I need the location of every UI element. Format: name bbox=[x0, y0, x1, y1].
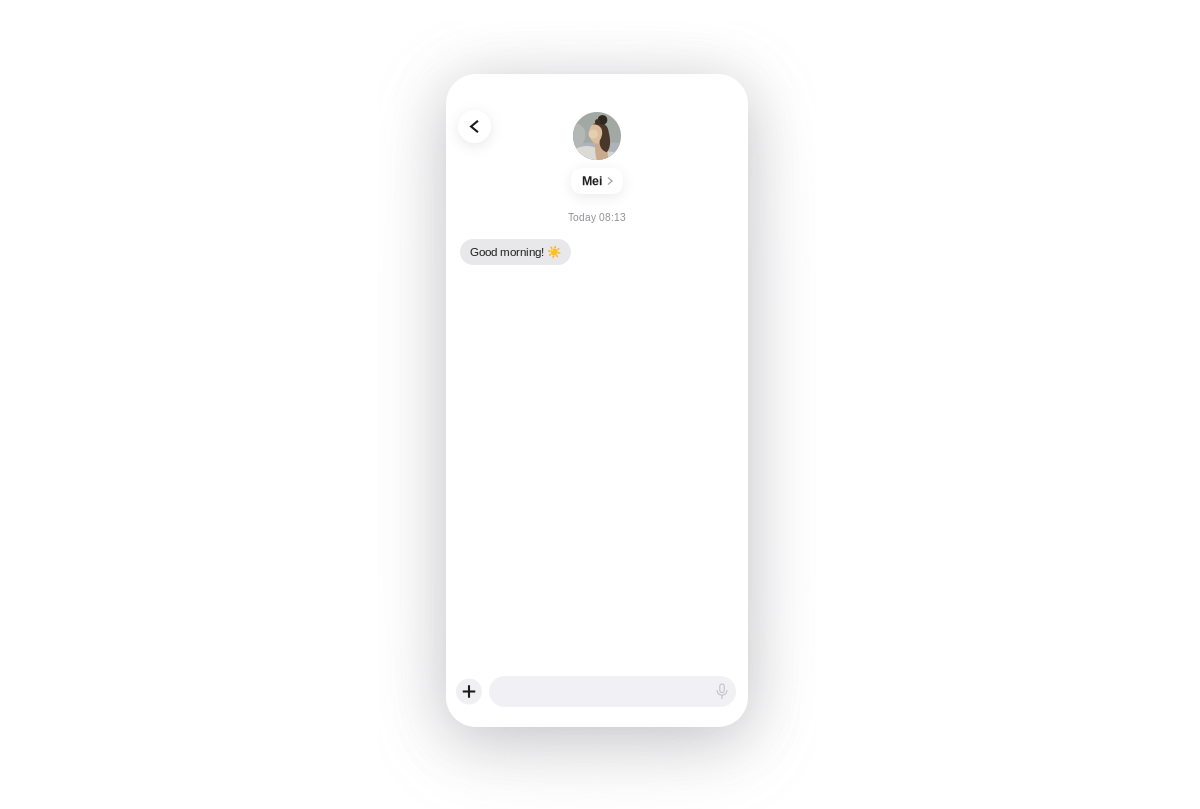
button[interactable]: Add attachment bbox=[456, 678, 482, 704]
button[interactable]: Good morning! ☀️ bbox=[460, 239, 571, 265]
button[interactable]: Mei bbox=[571, 168, 623, 194]
button[interactable]: Back bbox=[458, 110, 491, 143]
button[interactable]: Message field, dictate bbox=[489, 676, 736, 707]
staticText: Today 08:13 bbox=[568, 212, 626, 223]
button[interactable]: Mei profile photo bbox=[573, 112, 621, 160]
staticText: Mei bbox=[582, 174, 602, 188]
staticText: Good morning! ☀️ bbox=[470, 245, 561, 259]
